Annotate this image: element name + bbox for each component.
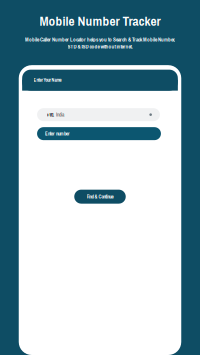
staticText: Find & Continue xyxy=(86,193,113,200)
staticText: Enter number xyxy=(45,130,70,137)
staticText: Mobile Number Tracker xyxy=(39,12,160,30)
staticText: Enter Your Name xyxy=(33,77,61,83)
staticText: +91 xyxy=(46,111,53,118)
staticText: Mobile Caller Number Locator helps you t… xyxy=(25,36,175,43)
staticText: STD & ISD code without internet. xyxy=(67,43,132,50)
staticText: India xyxy=(56,111,64,118)
button[interactable]: Find & Continue xyxy=(74,190,126,204)
button[interactable]: +91 xyxy=(37,108,160,121)
